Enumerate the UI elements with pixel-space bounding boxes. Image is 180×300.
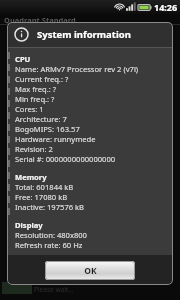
staticText: Min freq.: ? (15, 94, 55, 104)
staticText: Please wait... (34, 285, 74, 294)
staticText: Name: ARMv7 Processor rev 2 (v7l) (15, 64, 139, 74)
staticText: Inactive: 197576 kB (15, 202, 85, 212)
staticText: Current freq.: ? (15, 74, 69, 84)
staticText: Max freq.: ? (15, 84, 57, 94)
staticText: Resolution: 480x800 (15, 230, 87, 240)
staticText: Display (15, 220, 43, 230)
staticText: Memory (15, 172, 47, 182)
staticText: Hardware: runnymede (15, 134, 96, 144)
button[interactable]: OK (45, 261, 135, 280)
staticText: BogoMIPS: 163.57 (15, 124, 80, 134)
staticText: Total: 601844 kB (15, 182, 74, 192)
staticText: Free: 17080 kB (15, 192, 68, 202)
staticText: Architecture: 7 (15, 114, 67, 124)
staticText: Serial #: 0000000000000000 (15, 154, 116, 164)
staticText: Refresh rate: 60 Hz (15, 240, 83, 250)
staticText: CPU (15, 54, 31, 64)
staticText: System information (37, 28, 131, 41)
staticText: OK (84, 265, 97, 277)
staticText: Quadrant Standard (4, 15, 76, 25)
staticText: Revision: 2 (15, 144, 53, 154)
staticText: 14:26 (154, 1, 178, 13)
staticText: Cores: 1 (15, 104, 44, 114)
